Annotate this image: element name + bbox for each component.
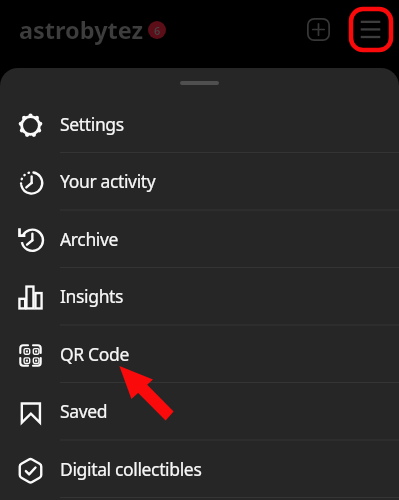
button[interactable]: Insights — [0, 268, 399, 326]
button[interactable]: Settings — [0, 96, 399, 154]
button[interactable]: Digital collectibles — [0, 441, 399, 499]
staticText: Digital collectibles — [60, 457, 202, 481]
staticText: Insights — [60, 284, 124, 308]
staticText: Your activity — [60, 169, 156, 193]
staticText: 6 — [154, 23, 161, 38]
button[interactable]: New post — [298, 9, 339, 50]
staticText: astrobytez — [19, 14, 144, 46]
staticText: Saved — [60, 399, 108, 423]
staticText: QR Code — [60, 342, 129, 366]
button[interactable]: QR Code — [0, 326, 399, 384]
staticText: Archive — [60, 227, 119, 251]
button[interactable]: Saved — [0, 383, 399, 441]
staticText: Settings — [60, 112, 124, 136]
button[interactable]: Archive — [0, 211, 399, 269]
button[interactable]: Your activity — [0, 153, 399, 211]
button[interactable]: Menu — [349, 7, 392, 50]
